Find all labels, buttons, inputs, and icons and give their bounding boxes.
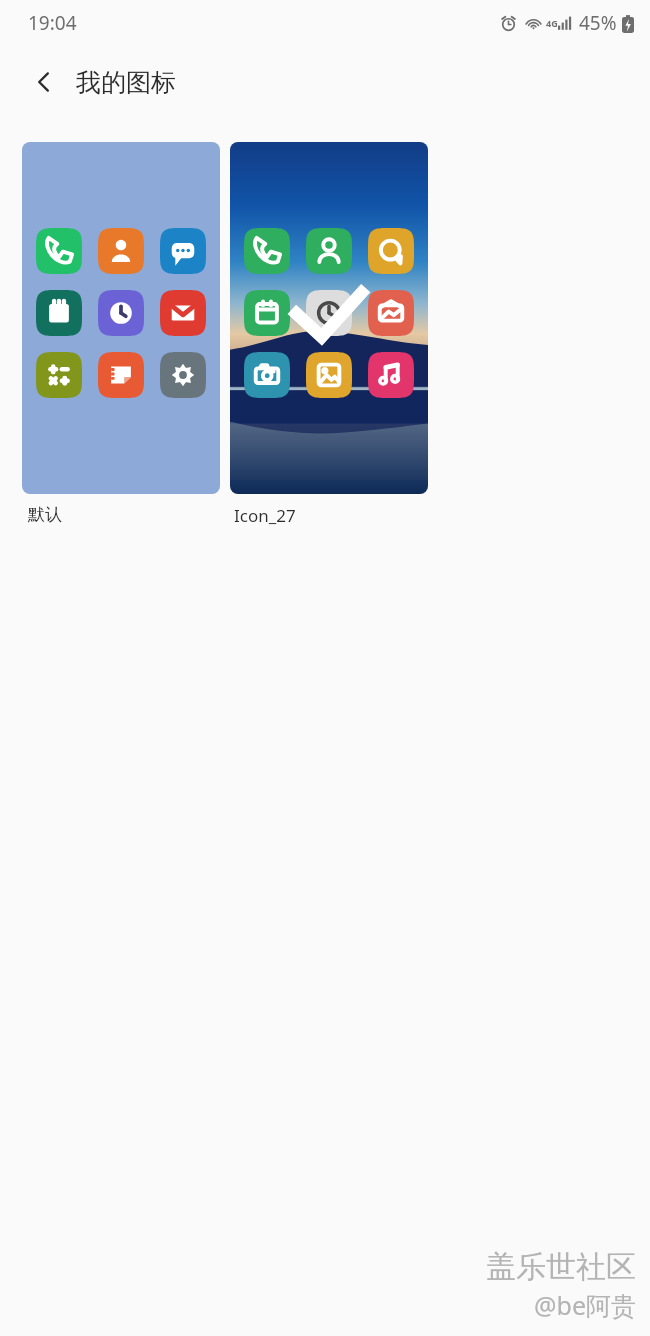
- staticText: Icon_27: [234, 504, 296, 527]
- button[interactable]: [230, 142, 428, 494]
- button[interactable]: Back: [22, 60, 66, 104]
- staticText: 45%: [579, 10, 617, 36]
- staticText: @be阿贵: [534, 1288, 636, 1322]
- button[interactable]: [22, 142, 220, 494]
- staticText: 我的图标: [76, 67, 176, 98]
- staticText: 19:04: [28, 10, 77, 36]
- staticText: 盖乐世社区: [486, 1248, 636, 1286]
- staticText: 默认: [28, 504, 62, 525]
- staticText: 4G: [546, 17, 558, 29]
